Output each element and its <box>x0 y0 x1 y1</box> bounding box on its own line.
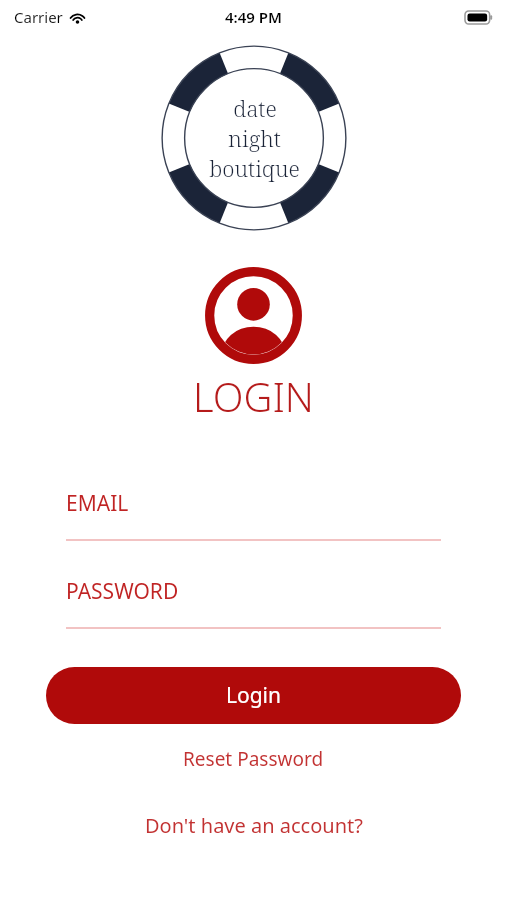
button[interactable]: PASSWORD <box>66 577 441 629</box>
staticText: Don't have an account? <box>145 812 363 839</box>
staticText: boutique <box>209 153 300 183</box>
button[interactable]: Don't have an account? <box>0 804 507 847</box>
staticText: EMAIL <box>66 489 129 518</box>
button[interactable]: EMAIL <box>66 489 441 541</box>
staticText: LOGIN <box>0 369 507 423</box>
staticText: night <box>228 123 281 153</box>
staticText: Login <box>226 681 282 710</box>
staticText: 4:49 PM <box>225 7 282 27</box>
staticText: PASSWORD <box>66 577 179 606</box>
staticText: date <box>233 93 277 123</box>
staticText: Carrier <box>14 7 63 27</box>
other: Account <box>205 267 302 364</box>
button[interactable]: Login <box>46 667 461 724</box>
staticText: Reset Password <box>183 746 324 772</box>
button[interactable]: Reset Password <box>0 738 507 780</box>
